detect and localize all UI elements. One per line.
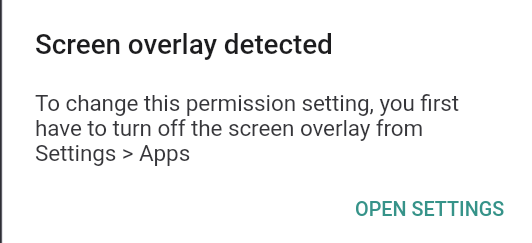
button[interactable]: OPEN SETTINGS [335,188,532,231]
staticText: To change this permission setting, you f… [35,90,459,166]
staticText: Screen overlay detected [35,28,333,61]
staticText: OPEN SETTINGS [355,198,505,221]
